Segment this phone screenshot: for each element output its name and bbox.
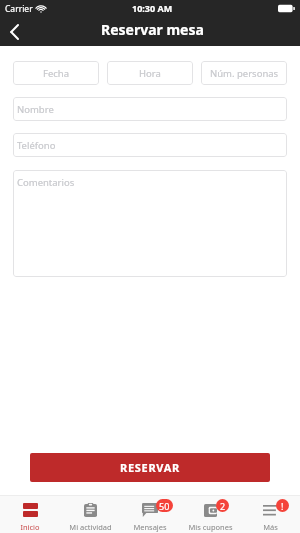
staticText: Carrier	[5, 3, 33, 15]
staticText: Mensajes	[133, 522, 167, 532]
staticText: Inicio	[20, 522, 40, 532]
staticText: 50	[159, 500, 170, 512]
staticText: Fecha	[43, 67, 70, 80]
button[interactable]: Fecha	[13, 61, 99, 85]
button[interactable]: 2	[180, 495, 240, 533]
button[interactable]: !	[240, 495, 300, 533]
staticText: Comentarios	[17, 176, 75, 189]
staticText: Núm. personas	[210, 67, 279, 80]
staticText: Teléfono	[17, 139, 56, 152]
staticText: !	[281, 500, 284, 512]
staticText: Hora	[139, 67, 161, 80]
button[interactable]: Nombre	[13, 97, 287, 121]
staticText: Mis cupones	[188, 522, 233, 532]
button[interactable]: Hora	[107, 61, 193, 85]
staticText: Reservar mesa	[101, 20, 204, 39]
staticText: 10:30 AM	[132, 2, 173, 14]
button[interactable]: Teléfono	[13, 133, 287, 157]
staticText: 2	[220, 500, 226, 512]
button[interactable]: Núm. personas	[201, 61, 287, 85]
button[interactable]: Mi actividad	[60, 495, 120, 533]
button[interactable]: Comentarios	[13, 170, 287, 277]
staticText: Mi actividad	[69, 522, 112, 532]
button[interactable]: RESERVAR	[30, 453, 270, 482]
button[interactable]: Inicio	[0, 495, 60, 533]
staticText: Nombre	[17, 103, 54, 116]
button[interactable]: 50	[120, 495, 180, 533]
staticText: Más	[263, 522, 278, 532]
button[interactable]: Back	[0, 18, 28, 46]
staticText: RESERVAR	[120, 460, 180, 475]
